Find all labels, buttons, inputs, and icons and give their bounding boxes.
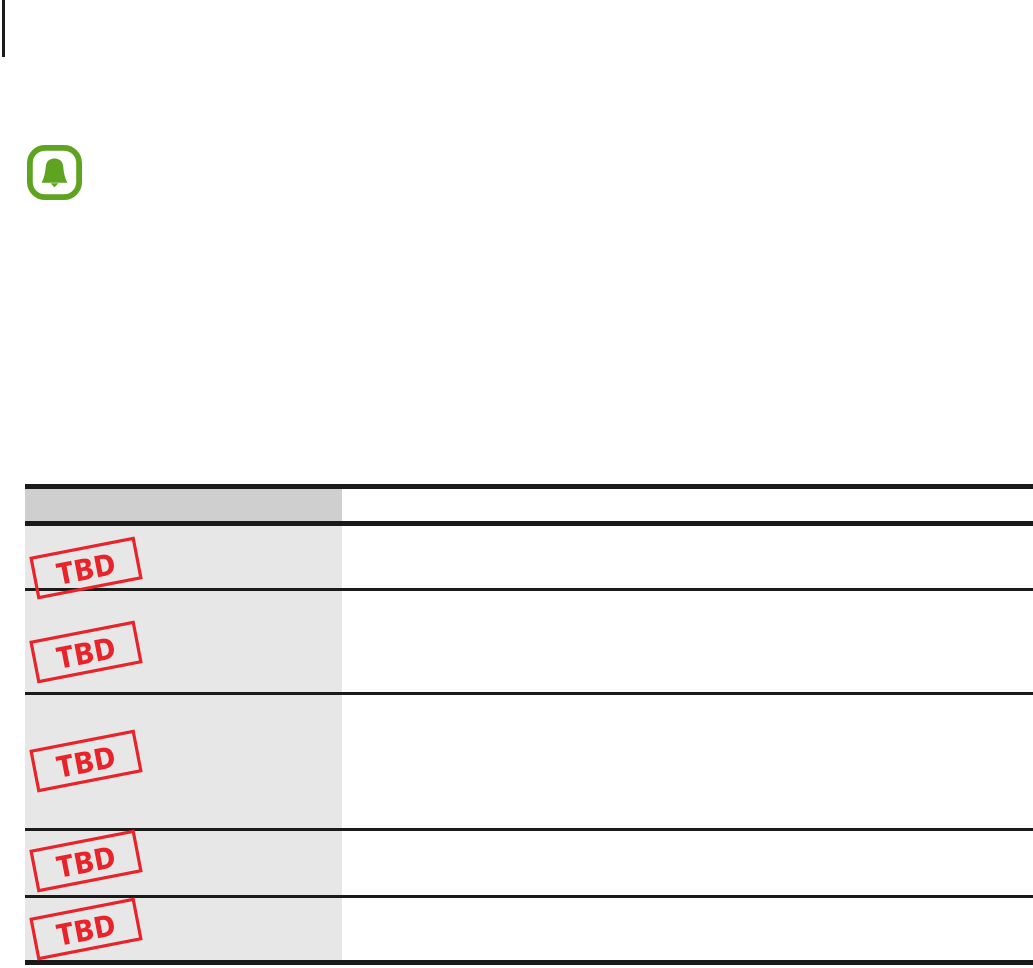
button[interactable]: Notification xyxy=(27,145,82,200)
